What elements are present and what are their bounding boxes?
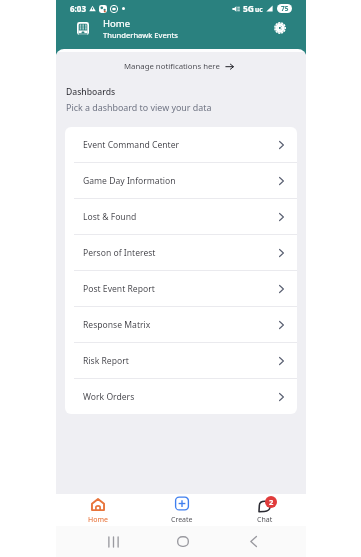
button[interactable]: 2 bbox=[223, 494, 306, 526]
staticText: Thunderhawk Events bbox=[103, 30, 178, 39]
button[interactable]: Home bbox=[56, 494, 140, 526]
staticText: Game Day Information bbox=[83, 175, 176, 187]
staticText: Create bbox=[171, 515, 193, 525]
staticText: Post Event Report bbox=[83, 283, 155, 295]
button[interactable]: Manage notifications here bbox=[118, 59, 240, 74]
staticText: Manage notifications here bbox=[124, 61, 220, 72]
staticText: Work Orders bbox=[83, 391, 135, 403]
staticText: Pick a dashboard to view your data bbox=[66, 101, 212, 113]
button[interactable]: Post Event Report bbox=[65, 271, 297, 306]
button[interactable]: Create bbox=[140, 494, 223, 526]
staticText: 2 bbox=[269, 497, 274, 507]
staticText: Dashboards bbox=[66, 86, 116, 98]
button[interactable]: Settings bbox=[271, 19, 289, 37]
staticText: Response Matrix bbox=[83, 319, 151, 331]
button[interactable]: Recent apps bbox=[78, 537, 148, 547]
button[interactable]: Work Orders bbox=[65, 379, 297, 414]
button[interactable]: Game Day Information bbox=[65, 163, 297, 198]
button[interactable]: Back bbox=[218, 536, 288, 547]
staticText: Home bbox=[103, 17, 131, 30]
staticText: Person of Interest bbox=[83, 247, 156, 259]
button[interactable]: Home bbox=[148, 536, 218, 547]
staticText: Risk Report bbox=[83, 355, 129, 367]
staticText: uc bbox=[255, 5, 263, 14]
button[interactable]: Risk Report bbox=[65, 343, 297, 378]
staticText: 6:03 bbox=[70, 3, 86, 14]
staticText: 75 bbox=[281, 4, 289, 13]
button[interactable]: Lost & Found bbox=[65, 199, 297, 234]
button[interactable]: Response Matrix bbox=[65, 307, 297, 342]
staticText: Lost & Found bbox=[83, 211, 137, 223]
button[interactable]: Person of Interest bbox=[65, 235, 297, 270]
staticText: Chat bbox=[257, 515, 273, 525]
button[interactable]: Event Command Center bbox=[65, 127, 297, 162]
staticText: Event Command Center bbox=[83, 139, 180, 151]
staticText: 5G bbox=[243, 3, 255, 15]
staticText: Home bbox=[88, 515, 108, 525]
